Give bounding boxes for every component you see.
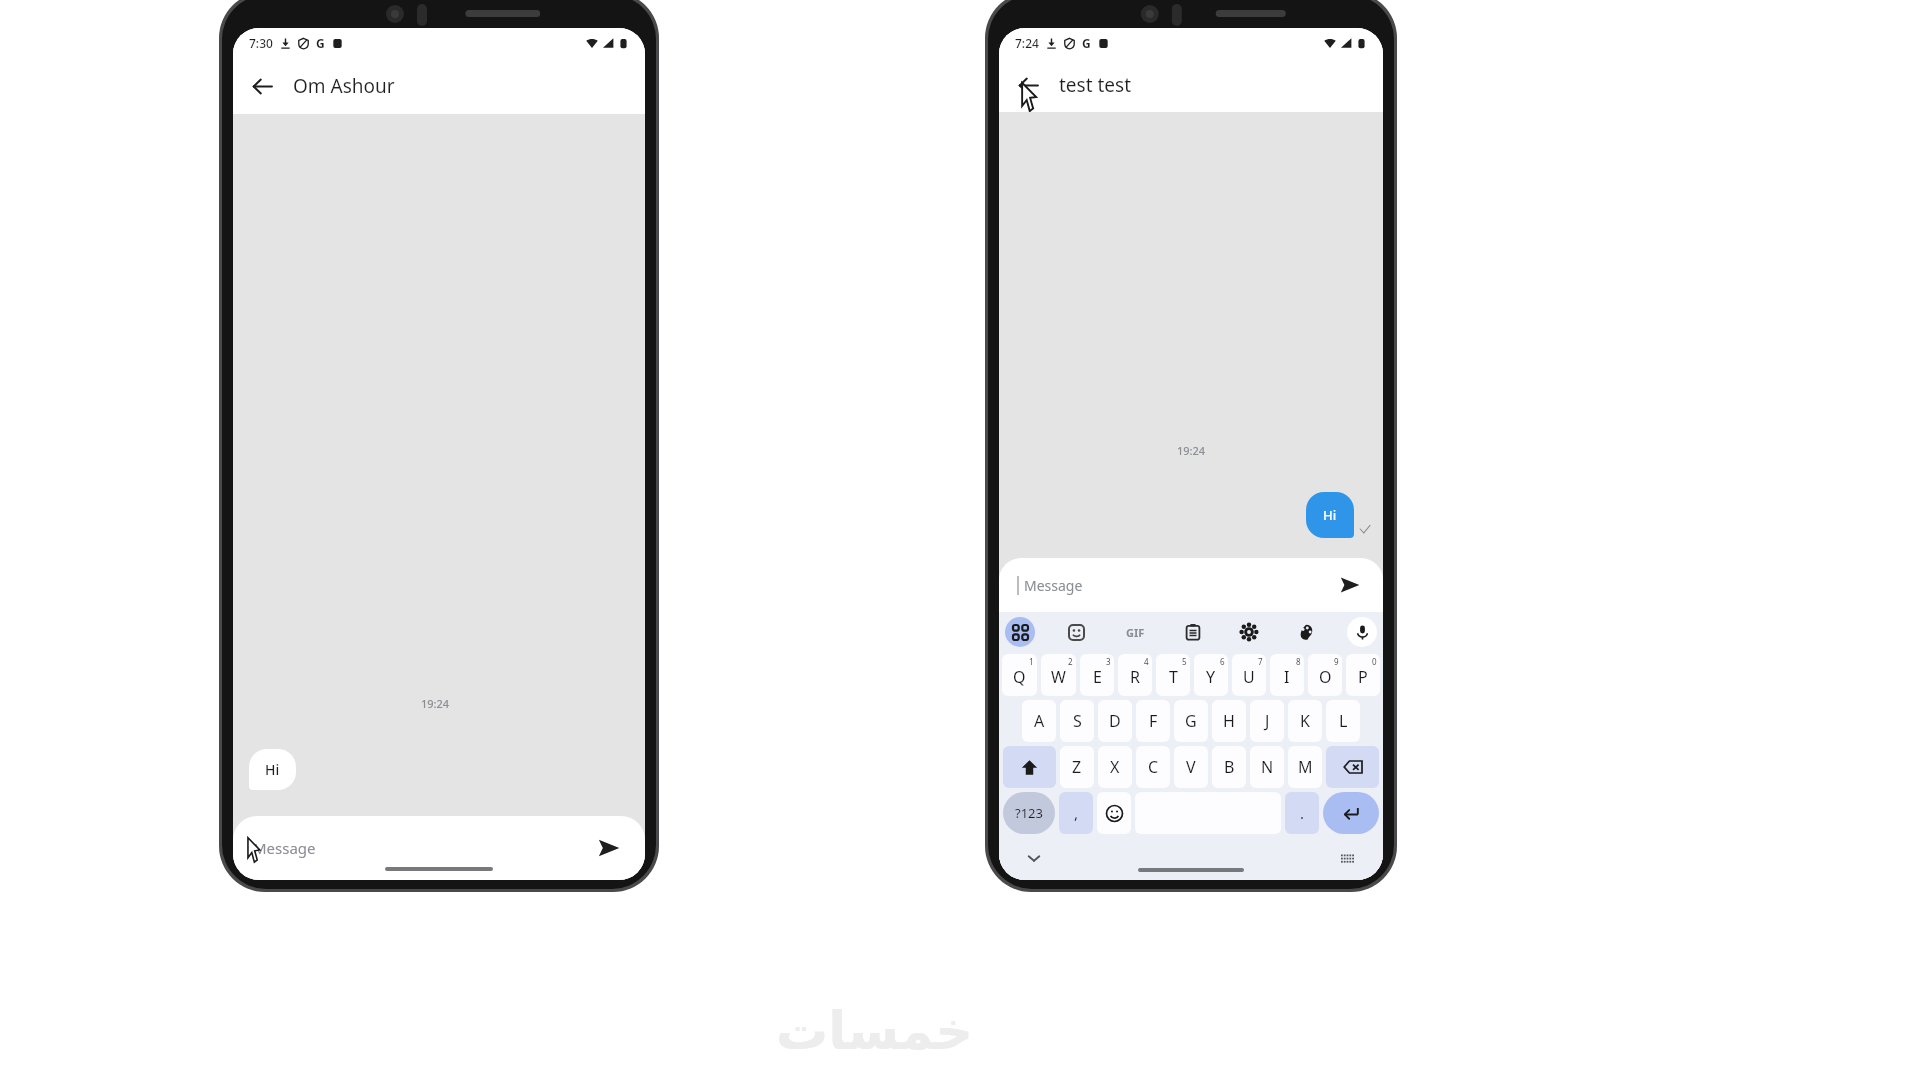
- staticText: N: [1261, 756, 1274, 778]
- button[interactable]: A: [1022, 700, 1056, 742]
- button[interactable]: E: [1080, 654, 1114, 696]
- staticText: .: [1300, 803, 1305, 823]
- staticText: 6: [1220, 656, 1225, 667]
- staticText: T: [1169, 666, 1178, 688]
- staticText: ,: [1074, 803, 1079, 823]
- staticText: 1: [1029, 656, 1034, 667]
- button[interactable]: C: [1136, 746, 1170, 788]
- button[interactable]: U: [1232, 654, 1266, 696]
- button[interactable]: G: [1174, 700, 1208, 742]
- staticText: 9: [1334, 656, 1339, 667]
- button[interactable]: V: [1174, 746, 1208, 788]
- button[interactable]: Clipboard: [1178, 617, 1208, 647]
- staticText: K: [1300, 710, 1310, 732]
- button[interactable]: P: [1346, 654, 1380, 696]
- button[interactable]: D: [1098, 700, 1132, 742]
- staticText: D: [1109, 710, 1121, 732]
- staticText: Message: [253, 838, 316, 858]
- button[interactable]: R: [1118, 654, 1152, 696]
- button[interactable]: Apps: [1005, 617, 1035, 647]
- staticText: M: [1298, 756, 1313, 778]
- button[interactable]: Send: [593, 832, 625, 864]
- staticText: W: [1051, 666, 1066, 688]
- button[interactable]: Z: [1060, 746, 1094, 788]
- staticText: V: [1186, 756, 1196, 778]
- staticText: 0: [1372, 656, 1377, 667]
- button[interactable]: Voice input: [1347, 617, 1377, 647]
- staticText: test test: [1059, 72, 1132, 98]
- button[interactable]: H: [1212, 700, 1246, 742]
- button[interactable]: B: [1212, 746, 1246, 788]
- button[interactable]: N: [1250, 746, 1284, 788]
- staticText: ?123: [1015, 804, 1043, 822]
- staticText: 7: [1258, 656, 1263, 667]
- button[interactable]: Send: [1335, 570, 1365, 600]
- button[interactable]: Emoji: [1097, 792, 1131, 834]
- button[interactable]: W: [1041, 654, 1076, 696]
- button[interactable]: Hi: [1306, 492, 1354, 538]
- button[interactable]: Backspace: [1326, 746, 1379, 788]
- button[interactable]: Theme: [1291, 617, 1321, 647]
- button[interactable]: Message: [253, 816, 625, 880]
- button[interactable]: Hide keyboard: [1021, 845, 1047, 871]
- button[interactable]: K: [1288, 700, 1322, 742]
- staticText: O: [1319, 666, 1332, 688]
- button[interactable]: Change keyboard: [1335, 845, 1361, 871]
- staticText: C: [1148, 756, 1159, 778]
- staticText: S: [1073, 710, 1082, 732]
- button[interactable]: S: [1060, 700, 1094, 742]
- button[interactable]: Y: [1194, 654, 1228, 696]
- staticText: 19:24: [233, 696, 637, 711]
- staticText: X: [1110, 756, 1120, 778]
- button[interactable]: GIF: [1118, 615, 1152, 649]
- button[interactable]: F: [1136, 700, 1170, 742]
- button[interactable]: Back: [1011, 68, 1045, 102]
- staticText: R: [1130, 666, 1140, 688]
- staticText: H: [1223, 710, 1235, 732]
- staticText: U: [1243, 666, 1255, 688]
- button[interactable]: L: [1326, 700, 1360, 742]
- staticText: 7:30: [249, 35, 273, 51]
- button[interactable]: O: [1308, 654, 1342, 696]
- staticText: GIF: [1126, 625, 1145, 640]
- button[interactable]: M: [1288, 746, 1322, 788]
- button[interactable]: T: [1156, 654, 1190, 696]
- button[interactable]: Enter: [1323, 792, 1379, 834]
- button[interactable]: Shift: [1003, 746, 1056, 788]
- staticText: Hi: [265, 760, 280, 779]
- staticText: F: [1149, 710, 1158, 732]
- staticText: 8: [1296, 656, 1301, 667]
- staticText: Hi: [1323, 506, 1337, 524]
- button[interactable]: Settings: [1234, 617, 1264, 647]
- staticText: Message: [1024, 576, 1083, 595]
- staticText: G: [316, 35, 325, 51]
- staticText: G: [1082, 35, 1091, 51]
- staticText: Z: [1072, 756, 1082, 778]
- staticText: 5: [1182, 656, 1187, 667]
- staticText: B: [1224, 756, 1235, 778]
- button[interactable]: Message: [1017, 558, 1365, 612]
- button[interactable]: Stickers: [1061, 617, 1091, 647]
- staticText: 7:24: [1015, 35, 1039, 51]
- staticText: 3: [1106, 656, 1111, 667]
- staticText: J: [1265, 710, 1270, 732]
- staticText: Om Ashour: [293, 73, 395, 99]
- button[interactable]: .: [1285, 792, 1319, 834]
- staticText: A: [1034, 710, 1045, 732]
- staticText: I: [1284, 666, 1290, 688]
- button[interactable]: J: [1250, 700, 1284, 742]
- button[interactable]: Hi: [249, 749, 296, 790]
- staticText: P: [1358, 666, 1368, 688]
- button[interactable]: Back: [245, 69, 279, 103]
- staticText: 4: [1144, 656, 1149, 667]
- staticText: L: [1339, 710, 1348, 732]
- button[interactable]: ,: [1059, 792, 1093, 834]
- button[interactable]: ?123: [1003, 792, 1055, 834]
- staticText: خمسات: [776, 1001, 974, 1062]
- button[interactable]: X: [1098, 746, 1132, 788]
- staticText: 2: [1068, 656, 1073, 667]
- button[interactable]: I: [1270, 654, 1304, 696]
- staticText: Y: [1206, 666, 1216, 688]
- button[interactable]: Q: [1002, 654, 1037, 696]
